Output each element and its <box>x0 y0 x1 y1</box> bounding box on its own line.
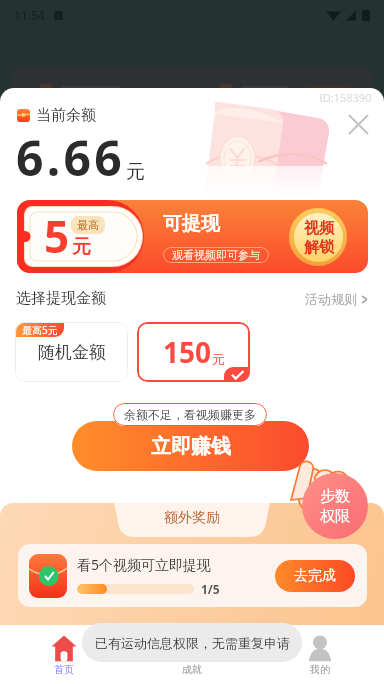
staticText: 观看视频即可参与 <box>172 248 260 262</box>
staticText: 最高5元 <box>22 323 58 337</box>
button[interactable]: 立即赚钱 <box>72 421 309 471</box>
staticText: 去完成 <box>294 567 336 585</box>
staticText: 可提现 <box>163 212 220 236</box>
staticText: 选择提现金额 <box>16 289 106 308</box>
staticText: 权限 <box>320 507 350 526</box>
staticText: 我的 <box>310 663 330 676</box>
button[interactable]: 首页 <box>0 625 128 684</box>
staticText: 最高 <box>77 218 99 232</box>
staticText: 元 <box>126 160 145 184</box>
staticText: 余额不足，看视频赚更多 <box>124 407 256 422</box>
staticText: 看5个视频可立即提现 <box>77 555 212 574</box>
button[interactable]: 5 <box>17 200 368 273</box>
button[interactable]: 我的 <box>256 625 384 684</box>
staticText: 元 <box>72 235 91 259</box>
staticText: 6.66 <box>16 125 126 190</box>
staticText: 当前余额 <box>36 106 96 125</box>
staticText: 活动规则 <box>305 291 357 307</box>
staticText: 1/5 <box>201 581 220 597</box>
staticText: 已有运动信息权限，无需重复申请 <box>95 635 290 651</box>
button[interactable]: 活动规则 <box>305 291 369 307</box>
staticText: 11:54 <box>14 7 45 23</box>
staticText: ID:158390 <box>319 90 372 105</box>
button[interactable]: 视频 <box>289 208 347 266</box>
staticText: 视频 <box>304 219 334 238</box>
staticText: 5 <box>44 206 70 266</box>
button[interactable]: 去完成 <box>275 560 355 592</box>
staticText: 首页 <box>54 663 74 676</box>
button[interactable]: 150 <box>137 322 250 382</box>
staticText: 解锁 <box>304 238 334 257</box>
staticText: 立即赚钱 <box>151 434 231 459</box>
staticText: 元 <box>212 351 225 367</box>
staticText: 150 <box>163 333 212 371</box>
staticText: 步数 <box>320 487 350 506</box>
staticText: 额外奖励 <box>164 509 220 527</box>
staticText: 随机金额 <box>38 342 106 363</box>
button[interactable]: 随机金额 <box>15 322 128 382</box>
button[interactable]: 成就 <box>128 625 256 684</box>
button[interactable]: 步数 <box>302 473 368 539</box>
button[interactable]: 关闭 <box>336 102 380 146</box>
staticText: 成就 <box>182 663 202 676</box>
